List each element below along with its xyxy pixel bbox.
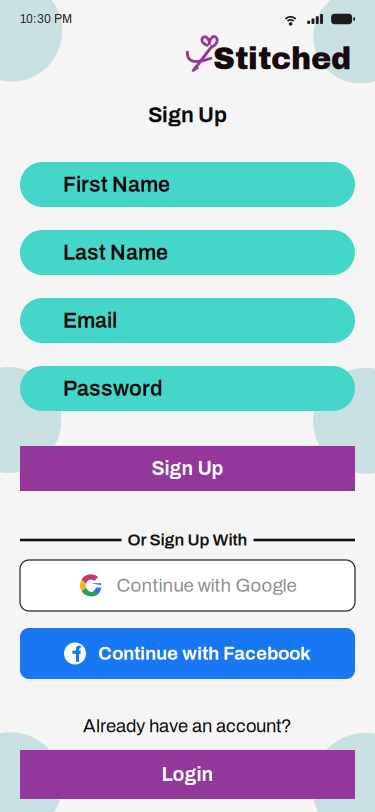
button[interactable]: Continue with Google <box>20 560 355 611</box>
button[interactable]: Sign Up <box>20 446 355 491</box>
button[interactable]: Continue with Facebook <box>20 628 355 679</box>
staticText: Last Name <box>63 241 168 264</box>
staticText: Already have an account? <box>83 716 292 736</box>
button[interactable]: Email <box>20 298 355 343</box>
staticText: Stitched <box>213 42 351 76</box>
staticText: Or Sign Up With <box>127 531 247 549</box>
button[interactable]: Login <box>20 750 355 799</box>
staticText: Sign Up <box>151 458 223 479</box>
staticText: First Name <box>63 173 170 196</box>
button[interactable]: First Name <box>20 162 355 207</box>
button[interactable]: Last Name <box>20 230 355 275</box>
button[interactable]: Password <box>20 366 355 411</box>
staticText: Password <box>63 377 163 400</box>
staticText: Login <box>161 764 213 785</box>
staticText: 10:30 PM <box>20 12 72 26</box>
staticText: Continue with Google <box>116 575 296 596</box>
staticText: Sign Up <box>148 103 227 127</box>
staticText: Email <box>63 309 117 332</box>
staticText: Continue with Facebook <box>98 643 311 664</box>
